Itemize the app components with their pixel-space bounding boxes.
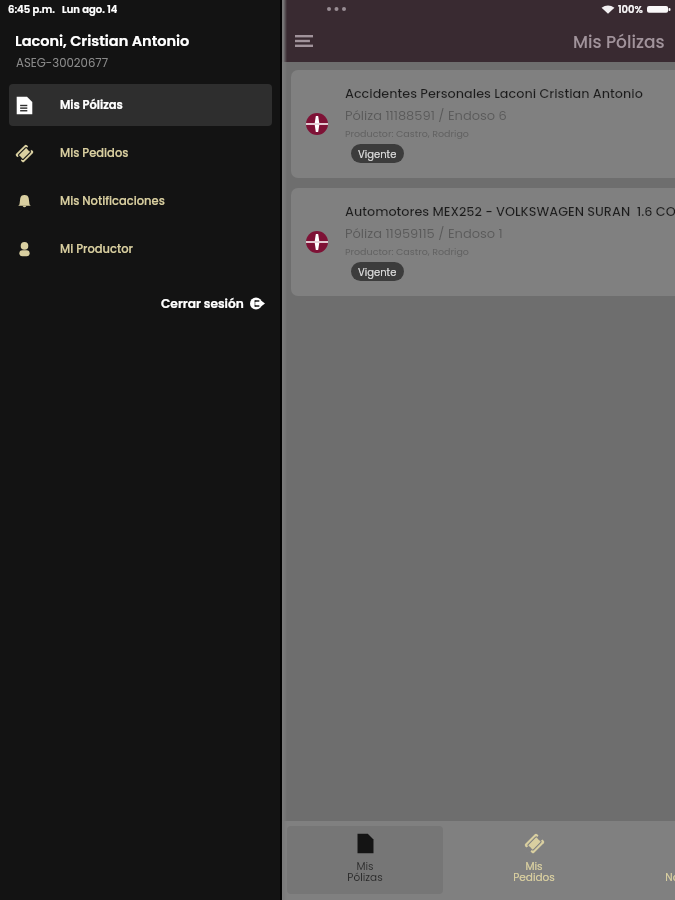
staticText: ASEG-30020677 bbox=[16, 55, 109, 71]
staticText: Mis Notificaciones bbox=[665, 859, 675, 885]
staticText: 6:45 p.m. Lun ago. 14 bbox=[8, 2, 118, 16]
staticText: Mis Pólizas bbox=[60, 97, 123, 113]
button[interactable]: Mis Pedidos bbox=[9, 132, 272, 174]
staticText: Mis Pólizas bbox=[347, 859, 383, 885]
staticText: Vigente bbox=[358, 265, 397, 279]
staticText: 100% bbox=[618, 2, 643, 16]
button[interactable]: Accidentes Personales Laconi Cristian An… bbox=[291, 70, 675, 178]
staticText: Mi Productor bbox=[60, 241, 133, 257]
staticText: Póliza 11959115 / Endoso 1 bbox=[345, 224, 503, 242]
button[interactable]: Automotores MEX252 - VOLKSWAGEN SURAN 1.… bbox=[291, 188, 675, 296]
staticText: Mis Pedidos bbox=[60, 145, 129, 161]
staticText: Póliza 11188591 / Endoso 6 bbox=[345, 106, 507, 124]
staticText: Mis Notificaciones bbox=[60, 193, 165, 209]
staticText: Cerrar sesión bbox=[161, 295, 244, 312]
staticText: Mis Pólizas bbox=[573, 30, 665, 54]
button[interactable]: Mis Pólizas bbox=[287, 826, 443, 894]
staticText: Productor: Castro, Rodrigo bbox=[345, 127, 469, 140]
button[interactable]: Cerrar sesión bbox=[0, 289, 265, 317]
button[interactable]: Open navigation menu bbox=[288, 25, 320, 57]
button[interactable]: Mis Pólizas bbox=[9, 84, 272, 126]
button[interactable]: Mi Productor bbox=[9, 228, 272, 270]
staticText: Productor: Castro, Rodrigo bbox=[345, 245, 469, 258]
staticText: Vigente bbox=[358, 147, 397, 161]
staticText: Accidentes Personales Laconi Cristian An… bbox=[345, 85, 643, 103]
staticText: Laconi, Cristian Antonio bbox=[15, 31, 190, 51]
button[interactable]: Mis Notificaciones bbox=[9, 180, 272, 222]
staticText: Automotores MEX252 - VOLKSWAGEN SURAN 1.… bbox=[345, 203, 675, 221]
button[interactable]: Mis Pedidos bbox=[455, 826, 612, 894]
button[interactable]: Mis Notificaciones bbox=[624, 826, 675, 894]
staticText: Mis Pedidos bbox=[513, 859, 555, 885]
